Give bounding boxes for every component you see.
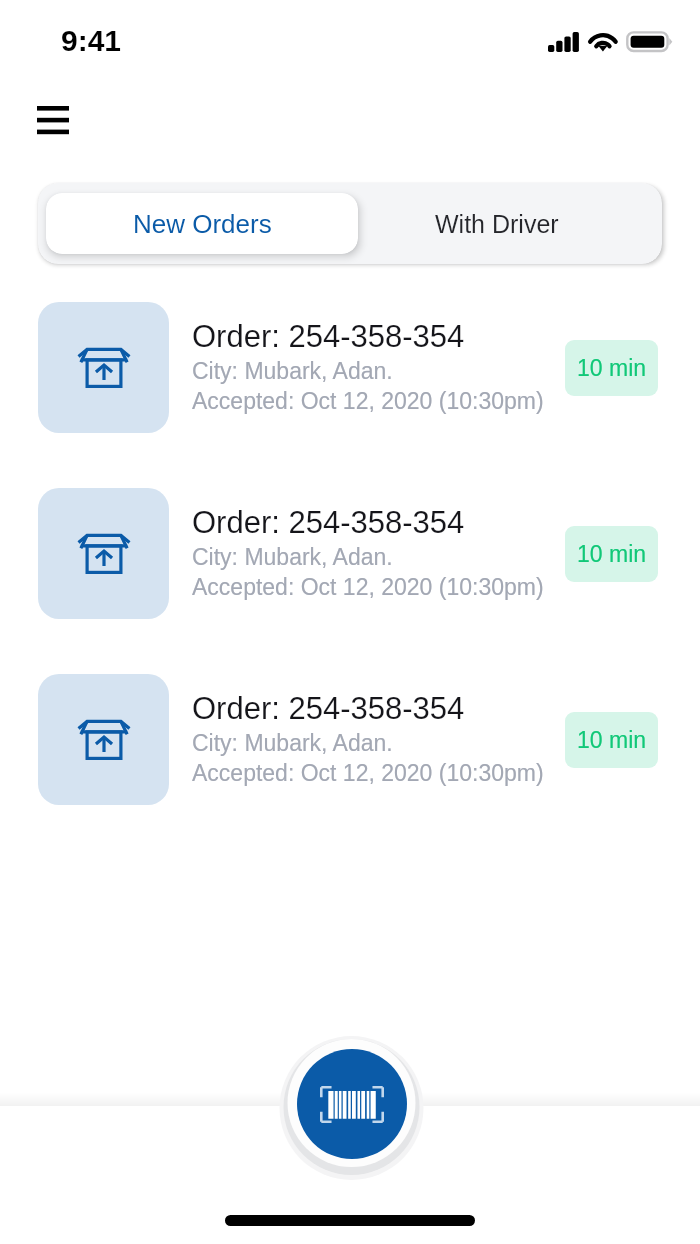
staticText: 10 min: [577, 355, 647, 381]
button[interactable]: With Driver: [351, 183, 642, 264]
staticText: New Orders: [133, 209, 272, 238]
staticText: Order: 254-358-354: [192, 319, 465, 354]
staticText: Accepted: Oct 12, 2020 (10:30pm): [192, 574, 544, 600]
button[interactable]: Order: 254-358-354: [0, 674, 700, 805]
button[interactable]: Menu: [22, 89, 84, 151]
staticText: Order: 254-358-354: [192, 505, 465, 540]
staticText: 10 min: [577, 541, 647, 567]
button[interactable]: New Orders: [46, 193, 358, 254]
button[interactable]: Scan barcode: [297, 1049, 407, 1159]
staticText: City: Mubark, Adan.: [192, 730, 393, 756]
button[interactable]: Order: 254-358-354: [0, 302, 700, 433]
staticText: 9:41: [61, 24, 122, 58]
staticText: 10 min: [577, 727, 647, 753]
staticText: Accepted: Oct 12, 2020 (10:30pm): [192, 760, 544, 786]
staticText: City: Mubark, Adan.: [192, 358, 393, 384]
button[interactable]: Order: 254-358-354: [0, 488, 700, 619]
staticText: City: Mubark, Adan.: [192, 544, 393, 570]
staticText: Accepted: Oct 12, 2020 (10:30pm): [192, 388, 544, 414]
staticText: Order: 254-358-354: [192, 691, 465, 726]
staticText: With Driver: [435, 210, 559, 238]
